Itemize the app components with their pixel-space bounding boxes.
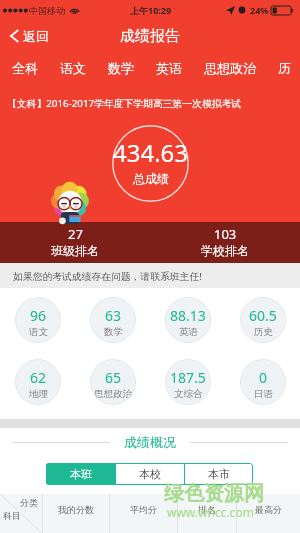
button[interactable]: 88.13 bbox=[165, 297, 211, 343]
staticText: 语文 bbox=[60, 60, 86, 76]
button[interactable]: 本市 bbox=[185, 463, 253, 485]
staticText: 本班 bbox=[70, 467, 92, 481]
staticText: 如果您的考试成绩存在问题，请联系班主任! bbox=[13, 270, 202, 283]
staticText: 学校排名 bbox=[201, 243, 249, 258]
staticText: 88.13 bbox=[170, 306, 206, 325]
staticText: 地理 bbox=[29, 388, 48, 400]
staticText: 最高分 bbox=[255, 504, 282, 515]
staticText: 27 bbox=[68, 225, 83, 243]
staticText: 数学 bbox=[104, 326, 123, 338]
button[interactable]: 103 bbox=[150, 226, 300, 259]
staticText: 日语 bbox=[254, 388, 273, 400]
staticText: 【文科】2016-2017学年度下学期高三第一次模拟考试 bbox=[7, 97, 300, 110]
button[interactable]: 27 bbox=[0, 226, 150, 259]
staticText: 我的分数 bbox=[58, 504, 94, 515]
button[interactable]: 返回 bbox=[0, 26, 55, 46]
staticText: 103 bbox=[214, 225, 237, 243]
staticText: 全科 bbox=[12, 60, 38, 76]
staticText: 思想政治 bbox=[94, 388, 132, 400]
button[interactable]: 历 bbox=[267, 56, 300, 80]
button[interactable]: 96 bbox=[15, 297, 61, 343]
button[interactable]: 本班 bbox=[46, 463, 115, 485]
staticText: 返回 bbox=[23, 28, 49, 44]
staticText: 60.5 bbox=[249, 306, 277, 325]
staticText: 科目 bbox=[3, 510, 21, 521]
staticText: 63 bbox=[105, 306, 122, 325]
staticText: 本市 bbox=[208, 467, 230, 481]
staticText: 历史 bbox=[254, 326, 273, 338]
staticText: 0 bbox=[259, 368, 268, 387]
staticText: 历 bbox=[278, 60, 289, 76]
button[interactable]: 思想政治 bbox=[193, 56, 267, 80]
staticText: 本校 bbox=[139, 467, 161, 481]
button[interactable]: 语文 bbox=[49, 56, 97, 80]
staticText: 思想政治 bbox=[204, 60, 256, 76]
staticText: 24% bbox=[250, 4, 269, 16]
staticText: www.wncc.com bbox=[167, 504, 254, 520]
staticText: 434.63 bbox=[113, 136, 189, 169]
staticText: 总成绩 bbox=[133, 171, 169, 186]
button[interactable]: 全科 bbox=[1, 56, 49, 80]
staticText: 平均分 bbox=[130, 504, 157, 515]
staticText: 96 bbox=[30, 306, 47, 325]
button[interactable]: 63 bbox=[90, 297, 136, 343]
button[interactable]: 0 bbox=[240, 359, 286, 405]
staticText: 英语 bbox=[156, 60, 182, 76]
staticText: 绿色资源网 bbox=[164, 481, 264, 506]
staticText: 成绩报告 bbox=[120, 27, 180, 46]
staticText: 班级排名 bbox=[51, 243, 99, 258]
button[interactable]: 本校 bbox=[116, 463, 184, 485]
staticText: 文综合 bbox=[174, 388, 203, 400]
staticText: 187.5 bbox=[170, 368, 206, 387]
staticText: 英语 bbox=[179, 326, 198, 338]
staticText: 分类 bbox=[20, 497, 38, 508]
button[interactable]: 62 bbox=[15, 359, 61, 405]
button[interactable]: 60.5 bbox=[240, 297, 286, 343]
staticText: 语文 bbox=[29, 326, 48, 338]
staticText: 成绩概况 bbox=[124, 434, 176, 450]
button[interactable]: 187.5 bbox=[165, 359, 211, 405]
staticText: 排名 bbox=[198, 504, 216, 515]
staticText: 62 bbox=[30, 368, 47, 387]
staticText: 中国移动 bbox=[29, 5, 65, 16]
staticText: 上午10:29 bbox=[130, 4, 172, 16]
button[interactable]: 数学 bbox=[97, 56, 145, 80]
staticText: 数学 bbox=[108, 60, 134, 76]
button[interactable]: 65 bbox=[90, 359, 136, 405]
staticText: 65 bbox=[105, 368, 122, 387]
button[interactable]: 英语 bbox=[145, 56, 193, 80]
